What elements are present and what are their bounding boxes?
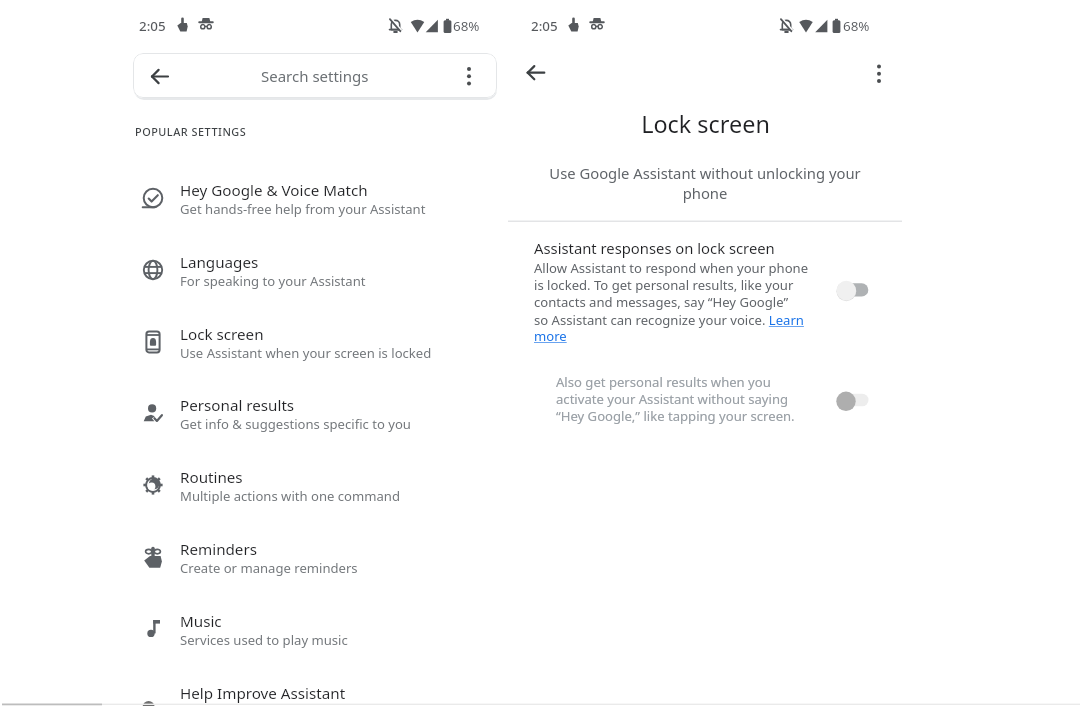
button[interactable]: Reminders — [118, 522, 500, 590]
staticText: 68% — [843, 17, 870, 35]
button[interactable]: Hey Google & Voice Match — [118, 163, 500, 231]
button[interactable]: Lock screen — [118, 307, 500, 375]
staticText: Services used to play music — [180, 631, 348, 649]
staticText: Lock screen — [180, 324, 264, 345]
staticText: Lock screen — [641, 108, 770, 140]
staticText: Hey Google & Voice Match — [180, 180, 368, 201]
staticText: Get info & suggestions specific to you — [180, 415, 411, 433]
staticText: Music — [180, 611, 222, 632]
staticText: Multiple actions with one command — [180, 487, 400, 505]
staticText: 2:05 — [139, 17, 166, 35]
staticText: activate your Assistant without saying — [556, 390, 789, 408]
button[interactable]: Music — [118, 594, 500, 662]
button[interactable] — [828, 383, 878, 421]
button[interactable] — [866, 56, 894, 90]
staticText: Also get personal results when you — [556, 373, 771, 391]
button[interactable]: Languages — [118, 235, 500, 303]
button[interactable] — [828, 272, 878, 310]
staticText: 68% — [453, 17, 480, 35]
staticText: Help Improve Assistant — [180, 683, 346, 704]
staticText: For speaking to your Assistant — [180, 272, 366, 290]
staticText: 2:05 — [531, 17, 558, 35]
staticText: POPULAR SETTINGS — [135, 124, 247, 139]
staticText: Use Assistant when your screen is locked — [180, 344, 432, 362]
staticText: Assistant responses on lock screen — [534, 238, 775, 258]
button[interactable]: more — [534, 327, 567, 345]
staticText: Search settings — [261, 66, 369, 86]
button[interactable] — [517, 54, 555, 92]
staticText: Languages — [180, 252, 259, 273]
staticText: Allow Assistant to respond when your pho… — [534, 259, 809, 277]
staticText: is locked. To get personal results, like… — [534, 276, 794, 294]
staticText: “Hey Google,” like tapping your screen. — [556, 407, 795, 425]
staticText: contacts and messages, say “Hey Google” — [534, 293, 789, 311]
button[interactable]: so Assistant can recognize your voice. L… — [534, 311, 804, 329]
button[interactable]: Routines — [118, 450, 500, 518]
staticText: Create or manage reminders — [180, 559, 358, 577]
staticText: Personal results — [180, 395, 295, 416]
staticText: Routines — [180, 467, 243, 488]
staticText: Get hands-free help from your Assistant — [180, 200, 426, 218]
button[interactable]: Help Improve Assistant — [118, 666, 500, 706]
button[interactable]: Personal results — [118, 378, 500, 446]
staticText: Use Google Assistant without unlocking y… — [549, 163, 861, 204]
button[interactable]: Search settings — [133, 53, 497, 98]
button[interactable] — [520, 232, 910, 352]
staticText: Reminders — [180, 539, 257, 560]
